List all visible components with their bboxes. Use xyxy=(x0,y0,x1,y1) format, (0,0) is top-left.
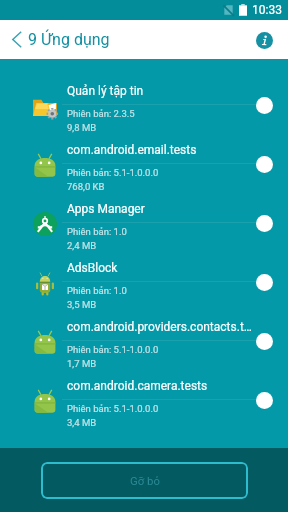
staticText: 3,4 MB xyxy=(67,417,97,428)
staticText: com.android.providers.contacts.t… xyxy=(67,320,252,334)
staticText: com.android.camera.tests xyxy=(67,379,208,393)
staticText: 2,4 MB xyxy=(67,240,97,251)
button[interactable]: com.android.email.tests xyxy=(0,137,288,196)
button[interactable]: AdsBlock xyxy=(0,255,288,314)
staticText: Phiên bản: 5.1-1.0.0.0 xyxy=(67,167,159,178)
button[interactable]: Back xyxy=(2,20,32,59)
staticText: Phiên bản: 5.1-1.0.0.0 xyxy=(67,403,159,414)
button[interactable]: Select app xyxy=(248,148,280,180)
button[interactable]: com.android.providers.contacts.t… xyxy=(0,314,288,373)
staticText: Quản lý tập tin xyxy=(67,84,144,98)
button[interactable]: Select app xyxy=(248,266,280,298)
staticText: Phiên bản: 1.0 xyxy=(67,226,127,237)
staticText: Phiên bản: 5.1-1.0.0.0 xyxy=(67,344,159,355)
staticText: Phiên bản: 1.0 xyxy=(67,285,127,296)
button[interactable]: com.android.camera.tests xyxy=(0,373,288,432)
button[interactable]: Select app xyxy=(248,89,280,121)
button[interactable]: Gỡ bỏ xyxy=(41,462,248,499)
button[interactable]: Select app xyxy=(248,207,280,239)
staticText: Phiên bản: 2.3.5 xyxy=(67,108,135,119)
button[interactable]: Select app xyxy=(248,325,280,357)
button[interactable]: Quản lý tập tin xyxy=(0,78,288,137)
button[interactable]: Select app xyxy=(248,384,280,416)
staticText: 3,5 MB xyxy=(67,299,97,310)
button[interactable]: Apps Manager xyxy=(0,196,288,255)
staticText: com.android.email.tests xyxy=(67,143,197,157)
button[interactable]: Information xyxy=(248,24,280,56)
staticText: 768,0 KB xyxy=(67,181,105,192)
staticText: 1,7 MB xyxy=(67,358,97,369)
staticText: Apps Manager xyxy=(67,202,145,216)
staticText: 10:33 xyxy=(252,3,282,17)
staticText: 9 Ứng dụng xyxy=(28,30,110,49)
staticText: 9,8 MB xyxy=(67,122,97,133)
staticText: AdsBlock xyxy=(67,261,118,275)
staticText: Gỡ bỏ xyxy=(130,474,160,487)
